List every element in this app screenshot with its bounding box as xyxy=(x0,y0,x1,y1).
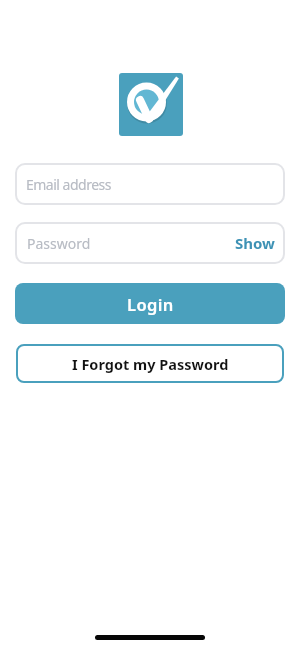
staticText: Email address xyxy=(26,175,111,194)
staticText: Show xyxy=(235,233,275,253)
staticText: I Forgot my Password xyxy=(72,354,229,374)
staticText: Password xyxy=(27,234,91,253)
staticText: Login xyxy=(127,293,174,315)
